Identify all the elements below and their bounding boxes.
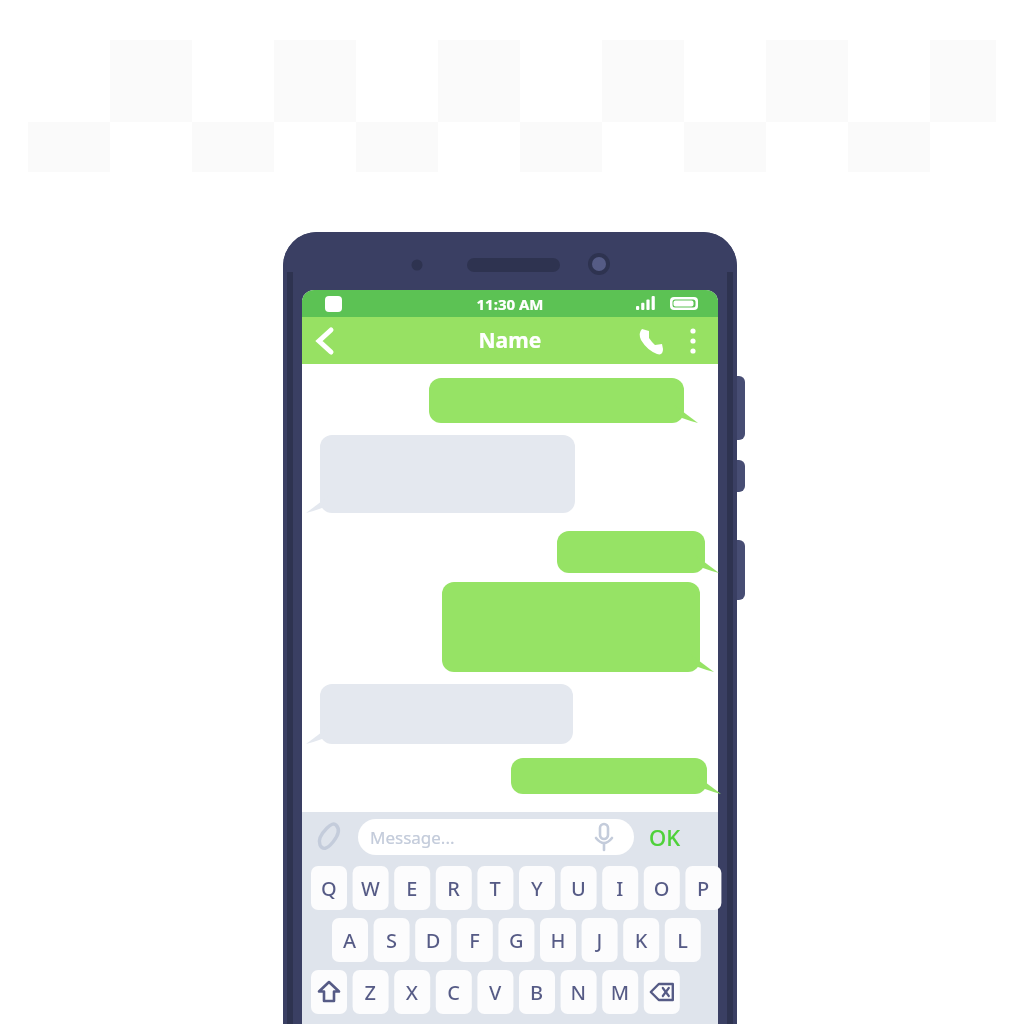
button[interactable]: Voice input (587, 818, 623, 854)
button[interactable]: Back (304, 318, 350, 364)
button[interactable]: Call (626, 318, 672, 364)
button[interactable]: More options (674, 318, 718, 362)
button[interactable]: Message input field (357, 818, 617, 858)
button[interactable]: Attach file (311, 817, 351, 857)
button[interactable]: OK send message (640, 816, 698, 860)
